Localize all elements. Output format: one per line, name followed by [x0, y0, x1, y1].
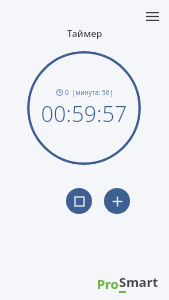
button[interactable]: Add minute — [104, 188, 130, 214]
staticText: 00:59:57 — [41, 98, 128, 128]
staticText: 0 — [65, 88, 69, 97]
button[interactable]: Stop — [66, 188, 92, 214]
staticText: Таймер — [67, 27, 103, 40]
staticText: |минута: 56| — [72, 88, 113, 97]
staticText: Pro — [97, 275, 119, 293]
button[interactable]: Menu — [141, 5, 163, 27]
staticText: Smart — [119, 273, 159, 291]
button[interactable]: Timer dial — [27, 51, 141, 165]
